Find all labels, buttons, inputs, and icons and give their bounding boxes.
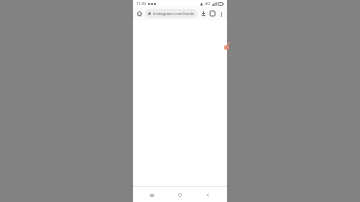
- staticText: 11:02: [136, 1, 147, 6]
- button[interactable]: Home: [171, 188, 189, 202]
- button[interactable]: Home: [135, 9, 144, 18]
- button[interactable]: Downloads: [199, 9, 208, 18]
- button[interactable]: Tabs: [208, 9, 217, 18]
- button[interactable]: instagram.com/tools: [145, 9, 197, 18]
- button[interactable]: More options: [217, 10, 225, 18]
- button[interactable]: Back: [199, 188, 217, 202]
- button[interactable]: Recent apps: [143, 188, 161, 202]
- staticText: instagram.com/tools: [153, 11, 194, 17]
- staticText: ▲: [200, 1, 204, 6]
- staticText: 4G: [205, 1, 211, 6]
